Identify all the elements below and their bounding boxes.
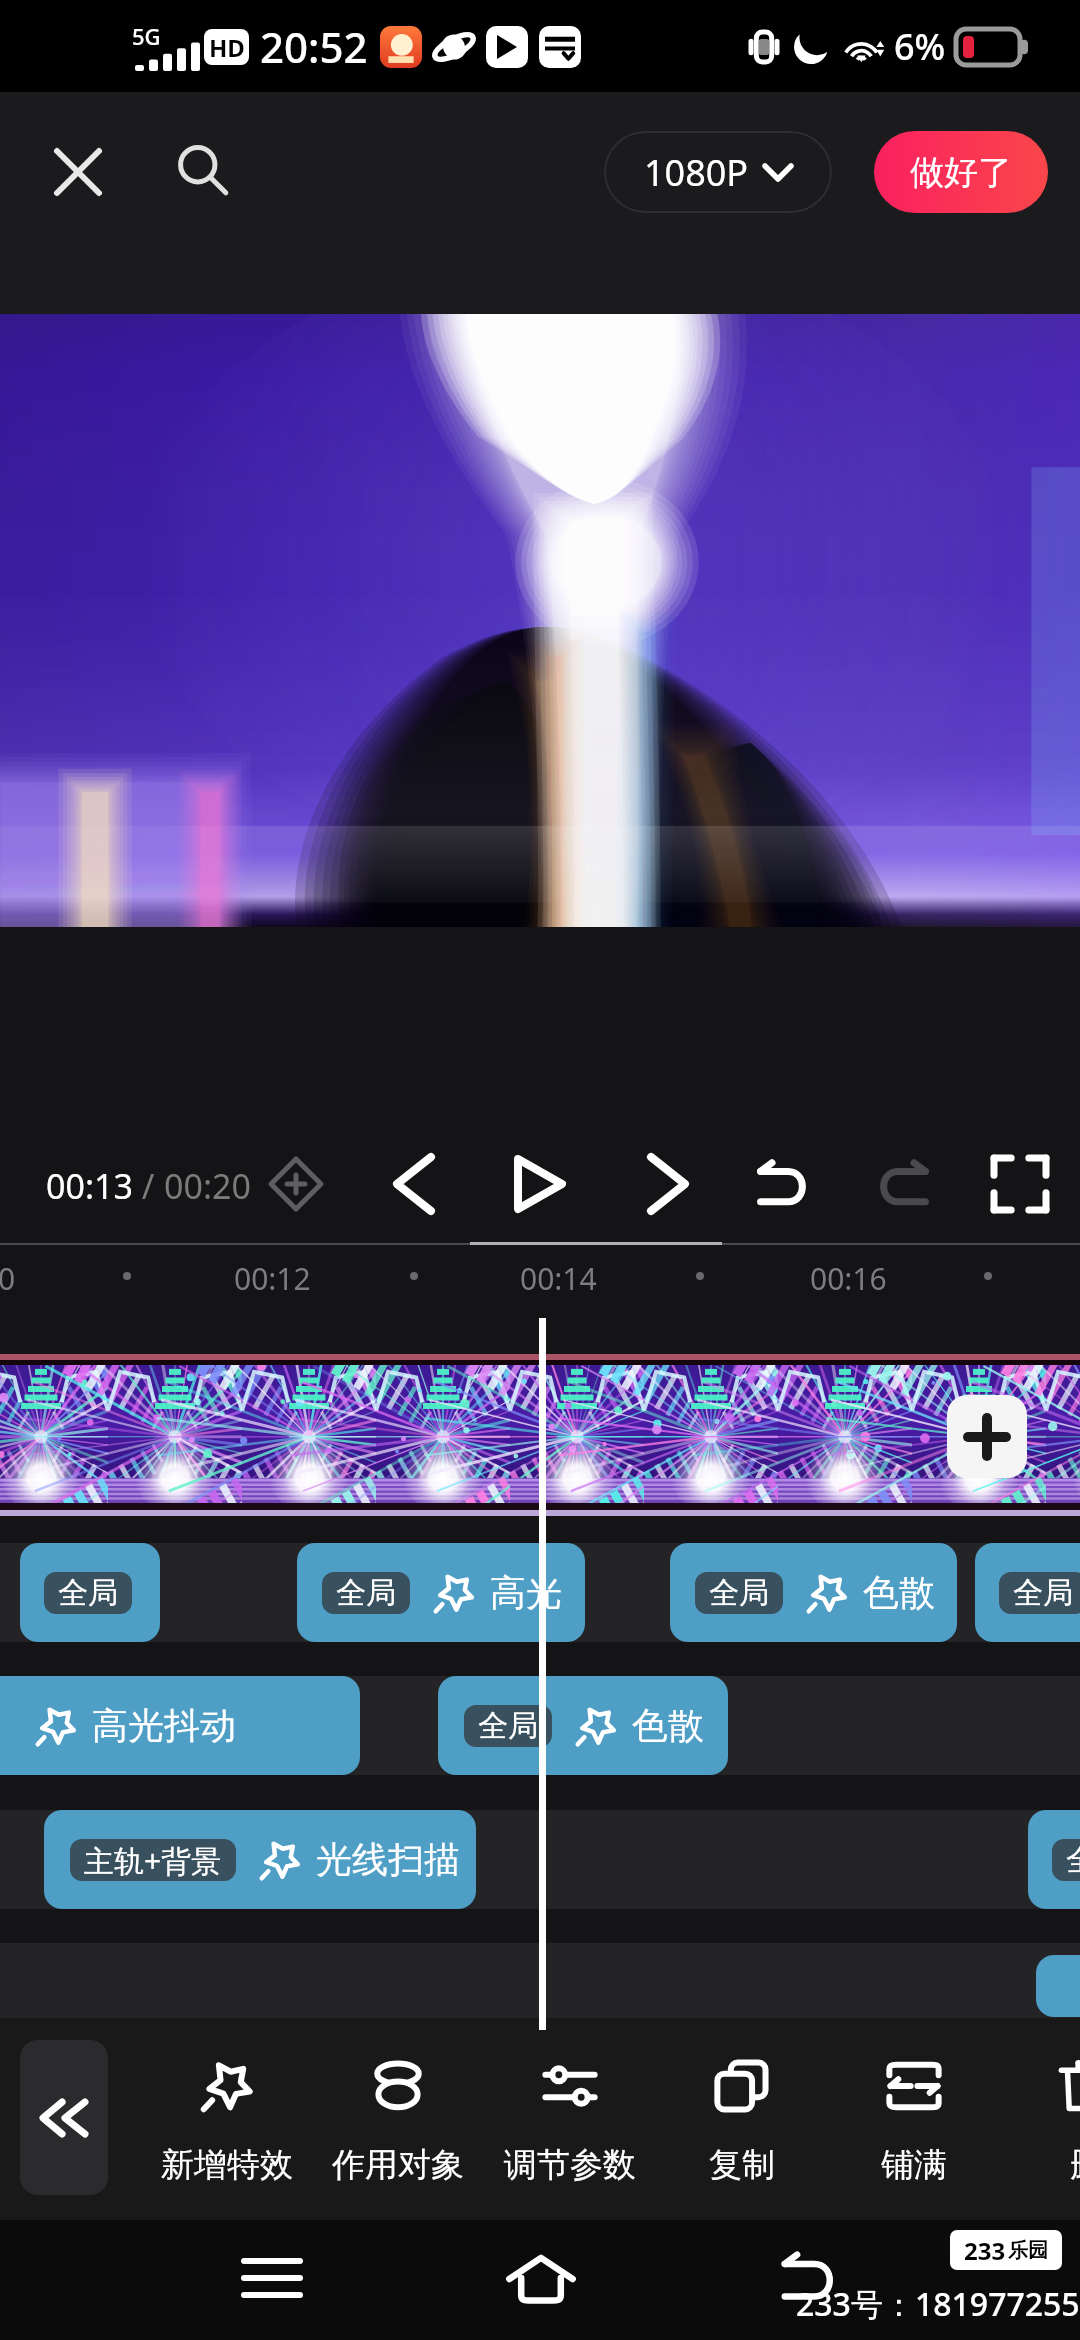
staticText: 主轨+背景 — [84, 1840, 222, 1881]
staticText: / — [133, 1163, 164, 1209]
staticText: 高光抖动 — [92, 1703, 236, 1748]
staticText: 复制 — [709, 2144, 775, 2186]
staticText: 全局 — [1013, 1574, 1073, 1612]
button[interactable]: 做好了 — [874, 131, 1048, 213]
staticText: 全 — [1066, 1841, 1080, 1879]
button[interactable]: Recent apps — [228, 2234, 316, 2322]
button[interactable]: Home — [497, 2234, 585, 2322]
button[interactable]: Redo — [858, 1140, 946, 1228]
staticText: HD — [209, 31, 245, 64]
staticText: 色散 — [632, 1703, 704, 1748]
staticText: 调节参数 — [504, 2144, 636, 2186]
button[interactable]: Add clip — [947, 1395, 1027, 1478]
staticText: 00:20 — [164, 1163, 251, 1209]
staticText: 233 — [964, 2234, 1006, 2267]
button[interactable]: 复制 — [664, 2040, 820, 2198]
button[interactable]: Add keyframe — [252, 1140, 340, 1228]
button[interactable]: 调节参数 — [492, 2040, 648, 2198]
staticText: 00:12 — [234, 1258, 311, 1299]
staticText: 0 — [0, 1258, 16, 1299]
staticText: 全局 — [58, 1574, 118, 1612]
staticText: 色散 — [863, 1570, 935, 1615]
button[interactable]: 全局 — [670, 1543, 957, 1642]
staticText: 全局 — [478, 1707, 538, 1745]
staticText: 1080P — [644, 148, 749, 197]
button[interactable]: Search — [162, 130, 246, 214]
button[interactable]: 新增特效 — [149, 2040, 305, 2198]
staticText: 做好了 — [910, 151, 1012, 194]
button[interactable]: Collapse toolbar — [20, 2040, 108, 2195]
staticText: 铺满 — [881, 2144, 947, 2186]
button[interactable]: Back — [766, 2234, 854, 2322]
button[interactable]: 铺满 — [836, 2040, 992, 2198]
staticText: 光线扫描 — [316, 1837, 460, 1882]
button[interactable] — [1036, 1955, 1080, 2017]
button[interactable]: 全局 — [438, 1676, 728, 1775]
staticText: 新增特效 — [161, 2144, 293, 2186]
button[interactable]: 全局 — [297, 1543, 585, 1642]
button[interactable]: Previous frame — [370, 1140, 458, 1228]
staticText: 00:16 — [810, 1258, 887, 1299]
staticText: 233号：181977255 — [796, 2282, 1080, 2326]
staticText: 00:13 — [46, 1163, 133, 1209]
staticText: 全局 — [336, 1574, 396, 1612]
button[interactable]: 作用对象 — [320, 2040, 476, 2198]
staticText: 高光 — [490, 1570, 562, 1615]
staticText: 作用对象 — [332, 2144, 464, 2186]
staticText: 20:52 — [260, 18, 368, 75]
staticText: 乐园 — [1008, 2238, 1048, 2263]
staticText: 5G — [132, 21, 161, 51]
staticText: 全局 — [709, 1574, 769, 1612]
staticText: 删 — [1070, 2144, 1080, 2186]
button[interactable]: 全 — [1028, 1810, 1080, 1909]
button[interactable]: 主轨+背景 — [44, 1810, 476, 1909]
staticText: 6% — [894, 22, 946, 71]
button[interactable]: 全局 — [975, 1543, 1080, 1642]
button[interactable]: 删 — [1008, 2040, 1080, 2198]
staticText: 00:14 — [520, 1258, 597, 1299]
button[interactable]: Undo — [740, 1140, 828, 1228]
button[interactable]: 高光抖动 — [0, 1676, 360, 1775]
button[interactable]: Fullscreen — [976, 1140, 1064, 1228]
button[interactable]: Close — [36, 130, 120, 214]
button[interactable]: 1080P — [604, 131, 832, 213]
button[interactable]: Next frame — [624, 1140, 712, 1228]
button[interactable]: Play — [496, 1140, 584, 1228]
button[interactable]: 全局 — [20, 1543, 160, 1642]
